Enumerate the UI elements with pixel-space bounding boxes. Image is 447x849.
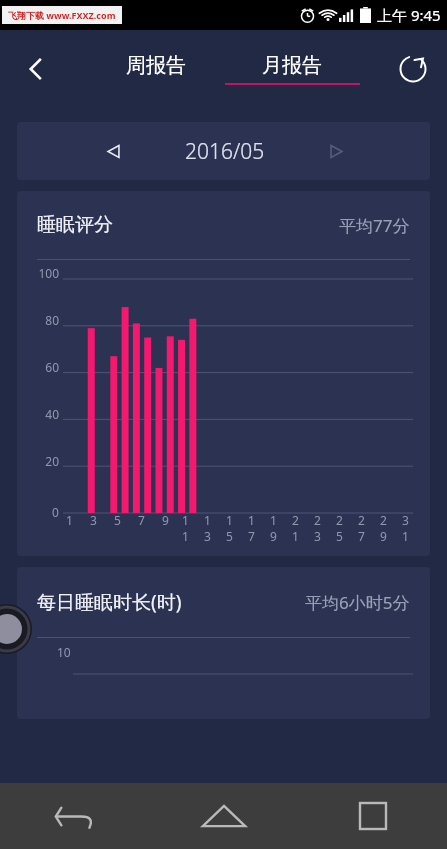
staticText: 17 xyxy=(248,512,259,544)
staticText: 10 xyxy=(57,644,71,660)
staticText: 60 xyxy=(45,359,59,375)
staticText: 80 xyxy=(45,312,59,328)
button[interactable]: 月报告 xyxy=(224,38,360,92)
staticText: 0 xyxy=(52,504,59,520)
button[interactable]: Next month xyxy=(314,129,358,173)
staticText: 100 xyxy=(38,265,59,281)
staticText: 25 xyxy=(336,512,347,544)
staticText: 睡眠评分 xyxy=(37,213,113,237)
staticText: 每日睡眠时长(时) xyxy=(37,589,182,615)
staticText: 29 xyxy=(380,512,391,544)
button[interactable]: Assistive touch xyxy=(0,604,32,654)
staticText: 20 xyxy=(45,453,59,469)
staticText: 月报告 xyxy=(262,53,322,78)
staticText: 1 xyxy=(66,512,73,528)
button[interactable]: Recent apps xyxy=(298,783,447,849)
button[interactable]: Home xyxy=(149,783,298,849)
staticText: 周报告 xyxy=(126,53,186,78)
staticText: 13 xyxy=(204,512,215,544)
staticText: 5 xyxy=(114,512,121,528)
button[interactable]: Previous month xyxy=(91,129,135,173)
staticText: 飞翔下载 www.FXXZ.com xyxy=(8,9,116,21)
staticText: 27 xyxy=(358,512,369,544)
staticText: 40 xyxy=(45,406,59,422)
button[interactable]: 周报告 xyxy=(88,38,224,92)
button[interactable]: Share xyxy=(389,45,437,93)
staticText: 平均77分 xyxy=(339,214,410,237)
button[interactable]: Back xyxy=(0,783,149,849)
staticText: 23 xyxy=(314,512,325,544)
staticText: 3 xyxy=(90,512,97,528)
staticText: 9 xyxy=(162,512,169,528)
staticText: 2016/05 xyxy=(185,137,265,166)
button[interactable]: Back xyxy=(12,45,60,93)
staticText: 15 xyxy=(226,512,237,544)
button[interactable]: 每日睡眠时长(时) xyxy=(17,567,430,719)
staticText: 21 xyxy=(292,512,303,544)
staticText: 上午 9:45 xyxy=(377,5,441,25)
button[interactable]: 睡眠评分 xyxy=(17,191,430,556)
staticText: 31 xyxy=(402,512,413,544)
staticText: 19 xyxy=(270,512,281,544)
staticText: 7 xyxy=(138,512,145,528)
staticText: 11 xyxy=(182,512,193,544)
staticText: 平均6小时5分 xyxy=(305,591,410,614)
